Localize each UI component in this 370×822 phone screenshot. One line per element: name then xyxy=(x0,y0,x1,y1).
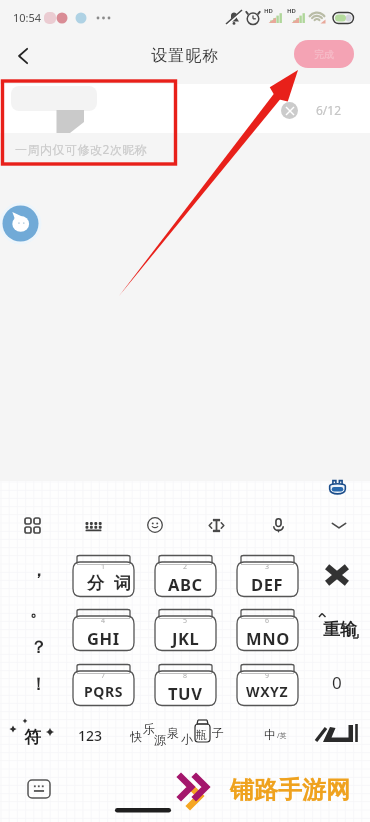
staticText: 分词 xyxy=(82,573,136,594)
button[interactable]: 8 xyxy=(154,661,217,707)
staticText: 一周内仅可修改2次昵称 xyxy=(15,141,148,157)
staticText: DEF xyxy=(251,573,284,595)
staticText: 小 xyxy=(181,731,193,746)
staticText: 符 xyxy=(24,727,41,748)
staticText: PQRS xyxy=(84,682,124,701)
button[interactable]: 4 xyxy=(72,606,135,652)
staticText: 6 xyxy=(265,616,270,626)
staticText: 快 xyxy=(130,729,142,744)
staticText: /英 xyxy=(277,731,287,741)
button[interactable]: 重输 xyxy=(313,606,365,650)
staticText: ABC xyxy=(168,573,203,595)
staticText: 泉 xyxy=(167,725,179,740)
button[interactable]: 7 xyxy=(72,661,135,707)
button[interactable]: 快 xyxy=(124,712,248,758)
staticText: HD xyxy=(287,7,296,15)
button[interactable]: AI assistant xyxy=(326,476,349,499)
staticText: 2 xyxy=(183,562,188,572)
button[interactable]: 0 xyxy=(313,660,361,704)
staticText: TUV xyxy=(168,682,203,704)
staticText: GHI xyxy=(87,627,120,649)
staticText: 9 xyxy=(265,671,270,681)
button[interactable]: 123 xyxy=(66,712,114,758)
staticText: 7 xyxy=(101,671,106,681)
button[interactable]: 中 xyxy=(252,712,304,758)
staticText: 子 xyxy=(212,725,224,740)
button[interactable]: 完成 xyxy=(294,40,354,68)
button[interactable]: Assistant xyxy=(0,200,48,248)
staticText: 源 xyxy=(154,732,166,747)
staticText: JKL xyxy=(172,627,200,649)
staticText: ， xyxy=(30,560,47,581)
staticText: 5 xyxy=(183,616,188,626)
button[interactable]: Voice input xyxy=(261,508,295,542)
button[interactable]: 符 xyxy=(4,712,60,758)
button[interactable]: 2 xyxy=(154,552,217,598)
staticText: MNO xyxy=(246,627,290,649)
button[interactable]: Back xyxy=(5,38,40,73)
button[interactable]: Keyboard layout xyxy=(76,508,110,542)
staticText: 乐 xyxy=(143,721,155,736)
button[interactable]: 6 xyxy=(236,606,299,652)
staticText: 瓶 xyxy=(196,728,207,742)
button[interactable]: 。 xyxy=(10,590,56,630)
button[interactable]: 9 xyxy=(236,661,299,707)
button[interactable]: 5 xyxy=(154,606,217,652)
staticText: 6/12 xyxy=(316,102,342,118)
button[interactable]: Clear text xyxy=(281,102,298,119)
staticText: 铺路手游网 xyxy=(230,775,350,805)
button[interactable]: Move cursor xyxy=(199,508,233,542)
staticText: 10:54 xyxy=(13,10,42,25)
staticText: HD xyxy=(264,7,273,15)
staticText: 完成 xyxy=(314,48,334,61)
button[interactable]: ！ xyxy=(10,664,56,704)
staticText: 。 xyxy=(30,600,47,621)
button[interactable]: Switch input method xyxy=(28,780,50,798)
button[interactable]: Delete xyxy=(313,553,361,597)
button[interactable]: 1 xyxy=(72,552,135,598)
staticText: 4 xyxy=(101,616,106,626)
staticText: 123 xyxy=(78,726,103,745)
staticText: 8 xyxy=(183,671,188,681)
staticText: 重输 xyxy=(323,619,357,640)
staticText: WXYZ xyxy=(246,682,289,701)
button[interactable]: Emoji xyxy=(138,508,172,542)
staticText: 3 xyxy=(265,562,270,572)
button[interactable]: 3 xyxy=(236,552,299,598)
button[interactable]: ， xyxy=(10,550,56,590)
staticText: ！ xyxy=(30,674,47,695)
staticText: ？ xyxy=(30,637,47,658)
button[interactable]: ？ xyxy=(10,627,56,667)
staticText: 1 xyxy=(101,562,106,572)
button[interactable]: Enter xyxy=(308,712,364,758)
button[interactable]: Hide keyboard xyxy=(322,508,356,542)
button[interactable]: Apps xyxy=(15,508,49,542)
staticText: 设置昵称 xyxy=(151,46,220,66)
staticText: 0 xyxy=(332,671,342,694)
staticText: 中 xyxy=(264,727,276,742)
